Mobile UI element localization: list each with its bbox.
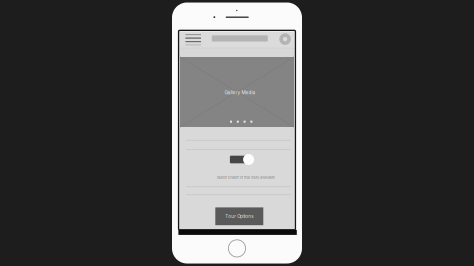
button[interactable]: Enable guided tours xyxy=(227,153,251,165)
staticText: Tour Options xyxy=(225,214,253,219)
button[interactable]: Tour Options xyxy=(215,207,263,225)
staticText: Button Enable or real tours available xyxy=(217,175,275,180)
button[interactable]: Account xyxy=(279,33,291,45)
button[interactable]: Menu xyxy=(185,34,201,46)
staticText: Gallery Media xyxy=(224,90,255,95)
